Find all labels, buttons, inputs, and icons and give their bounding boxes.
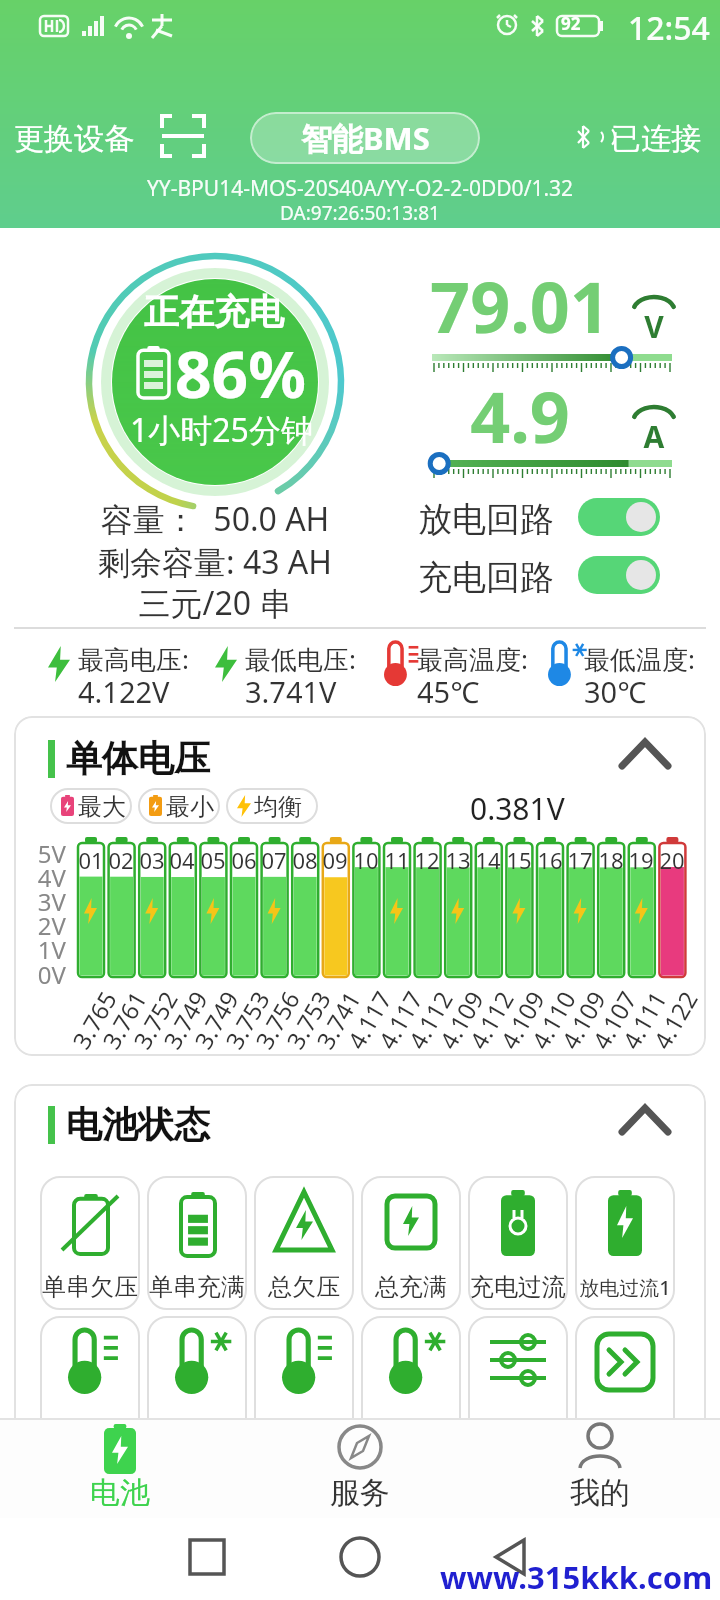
staticText: 11 xyxy=(384,845,410,875)
button[interactable] xyxy=(468,1316,568,1450)
staticText: 14 xyxy=(475,845,501,875)
button[interactable] xyxy=(147,1316,247,1450)
button[interactable]: 更换设备 xyxy=(14,112,144,162)
staticText: 已连接 xyxy=(611,120,701,158)
staticText: 我的 xyxy=(540,1474,660,1512)
button[interactable] xyxy=(254,1316,354,1450)
staticText: V xyxy=(642,306,666,347)
button[interactable]: 总充满 xyxy=(361,1176,461,1310)
button[interactable]: 均衡 xyxy=(226,788,318,824)
staticText: 0V xyxy=(20,958,66,991)
staticText: 06 xyxy=(231,845,257,875)
button[interactable]: 放电过流1 xyxy=(575,1176,675,1310)
staticText: 4.117 xyxy=(361,985,430,1056)
staticText: 服务 xyxy=(300,1474,420,1512)
staticText: 08 xyxy=(292,845,318,875)
staticText: 4.110 xyxy=(514,985,583,1056)
button[interactable]: 智能BMS xyxy=(250,112,480,164)
staticText: 充电回路 xyxy=(418,556,554,599)
staticText: 3.752 xyxy=(116,985,185,1056)
staticText: YY-BPU14-MOS-20S40A/YY-O2-2-0DD0/1.32 xyxy=(0,174,720,203)
button[interactable]: 最大 xyxy=(50,788,132,824)
staticText: 45℃ xyxy=(417,672,480,711)
button[interactable]: 充电过流 xyxy=(468,1176,568,1310)
staticText: 09 xyxy=(322,845,348,875)
staticText: 01 xyxy=(78,845,104,875)
staticText: 4.112 xyxy=(452,985,521,1056)
button[interactable]: 已连接 xyxy=(575,116,707,160)
button[interactable]: 电池 xyxy=(60,1418,180,1518)
staticText: 4.109 xyxy=(483,985,552,1056)
staticText: 1V xyxy=(20,933,66,966)
staticText: 0.381V xyxy=(470,788,565,829)
staticText: www.315kkk.com xyxy=(440,1556,713,1598)
staticText: 3V xyxy=(20,885,66,918)
button[interactable] xyxy=(361,1316,461,1450)
staticText: A xyxy=(642,416,666,457)
staticText: 04 xyxy=(169,845,195,875)
staticText: 放电过流1 xyxy=(575,1274,675,1301)
button[interactable] xyxy=(160,114,208,160)
staticText: 4.107 xyxy=(575,985,644,1056)
staticText: 放电回路 xyxy=(418,498,554,541)
button[interactable]: 单串欠压 xyxy=(40,1176,140,1310)
staticText: 5V xyxy=(20,837,66,870)
staticText: 3.765 xyxy=(55,985,124,1056)
staticText: 充电过流 xyxy=(468,1272,568,1302)
staticText: 3.741V xyxy=(245,672,337,711)
staticText: 03 xyxy=(139,845,165,875)
staticText: 92 xyxy=(561,12,581,35)
button[interactable] xyxy=(470,1528,560,1588)
staticText: 最低电压: xyxy=(245,641,356,677)
staticText: 三元/20 串 xyxy=(0,581,430,625)
staticText: 最低温度: xyxy=(584,641,695,677)
staticText: 2V xyxy=(20,909,66,942)
staticText: 3.756 xyxy=(238,985,307,1056)
staticText: 19 xyxy=(628,845,654,875)
staticText: 总欠压 xyxy=(254,1272,354,1302)
button[interactable] xyxy=(40,1316,140,1450)
staticText: 18 xyxy=(598,845,624,875)
staticText: 10 xyxy=(353,845,379,875)
button[interactable]: 最小 xyxy=(138,788,220,824)
button[interactable]: 单串充满 xyxy=(147,1176,247,1310)
staticText: 12:54 xyxy=(628,6,710,50)
staticText: 86% xyxy=(175,330,306,417)
staticText: 最高温度: xyxy=(417,641,528,677)
staticText: 电池状态 xyxy=(66,1102,210,1147)
staticText: 02 xyxy=(108,845,134,875)
staticText: DA:97:26:50:13:81 xyxy=(0,200,720,226)
staticText: 单体电压 xyxy=(66,736,210,781)
staticText: 4.9 xyxy=(425,368,615,463)
button[interactable]: 服务 xyxy=(300,1418,420,1518)
staticText: 3.749 xyxy=(177,985,246,1056)
staticText: 4.117 xyxy=(330,985,399,1056)
button[interactable] xyxy=(320,1528,410,1588)
button[interactable] xyxy=(575,1316,675,1450)
staticText: 3.753 xyxy=(208,985,277,1056)
button[interactable] xyxy=(160,1528,250,1588)
staticText: 电池 xyxy=(60,1474,180,1512)
button[interactable] xyxy=(578,498,660,536)
staticText: 单串充满 xyxy=(147,1272,247,1302)
staticText: 4V xyxy=(20,861,66,894)
staticText: 13 xyxy=(445,845,471,875)
staticText: 30℃ xyxy=(584,672,647,711)
staticText: 1小时25分钟 xyxy=(130,408,313,452)
staticText: 最大 xyxy=(78,792,126,822)
staticText: 07 xyxy=(261,845,287,875)
staticText: 4.111 xyxy=(605,985,674,1056)
staticText: 4.122V xyxy=(78,672,170,711)
staticText: 总充满 xyxy=(361,1272,461,1302)
staticText: 4.122 xyxy=(636,985,705,1056)
staticText: 05 xyxy=(200,845,226,875)
button[interactable] xyxy=(610,1098,680,1144)
button[interactable] xyxy=(610,732,680,778)
staticText: 最高电压: xyxy=(78,641,189,677)
button[interactable] xyxy=(578,556,660,594)
staticText: 15 xyxy=(506,845,532,875)
button[interactable]: 我的 xyxy=(540,1418,660,1518)
staticText: 16 xyxy=(537,845,563,875)
staticText: 4.109 xyxy=(544,985,613,1056)
button[interactable]: 总欠压 xyxy=(254,1176,354,1310)
